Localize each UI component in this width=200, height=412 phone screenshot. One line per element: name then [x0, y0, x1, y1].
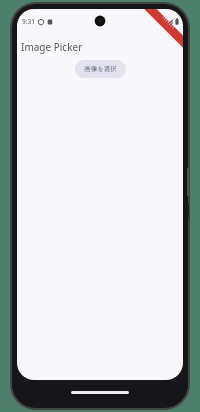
other: Debug banner	[143, 9, 183, 49]
staticText: 画像を選択	[84, 65, 117, 73]
button[interactable]: 画像を選択	[75, 60, 126, 78]
staticText: Image Picker	[21, 40, 83, 54]
staticText: 9:31	[22, 17, 35, 26]
